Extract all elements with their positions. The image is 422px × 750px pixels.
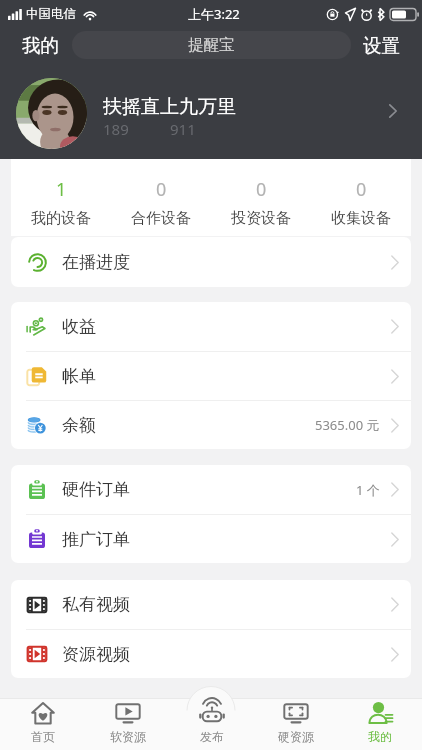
button[interactable]: 在播进度 [11,237,411,287]
staticText: 0 [156,177,167,202]
staticText: 帐单 [62,366,96,387]
staticText: 中国电信 [26,6,76,22]
button[interactable]: 扶摇直上九万里 [0,62,422,159]
staticText: 提醒宝 [188,35,235,55]
staticText: 0 [356,177,367,202]
staticText: 1 [56,177,67,202]
button[interactable]: 收益 [11,302,411,351]
staticText: 合作设备 [131,209,191,228]
button[interactable]: 0 [211,172,311,223]
staticText: 硬件订单 [62,479,130,500]
button[interactable]: 软资源 [85,686,170,750]
staticText: 我的 [368,729,392,744]
button[interactable]: 硬件订单 [11,465,411,514]
staticText: 5365.00 元 [315,416,380,434]
staticText: 余额 [62,415,96,436]
button[interactable]: 我的 [0,28,72,62]
staticText: 0 [256,177,267,202]
button[interactable]: 我的 [338,686,422,750]
staticText: 投资设备 [231,209,291,228]
button[interactable]: 余额 [11,401,411,449]
button[interactable]: 设置 [351,28,422,62]
staticText: 发布 [200,729,224,744]
staticText: 我的设备 [31,209,91,228]
staticText: 扶摇直上九万里 [103,95,236,119]
staticText: 推广订单 [62,529,130,550]
staticText: 收集设备 [331,209,391,228]
staticText: 首页 [31,729,55,744]
button[interactable]: 0 [311,172,411,223]
button[interactable]: 提醒宝 [72,31,351,59]
staticText: 收益 [62,316,96,337]
button[interactable]: 首页 [0,686,85,750]
button[interactable]: 资源视频 [11,630,411,678]
button[interactable]: 0 [111,172,211,223]
button[interactable]: 帐单 [11,352,411,400]
staticText: 资源视频 [62,644,130,665]
button[interactable]: 硬资源 [254,686,338,750]
staticText: 1 个 [356,481,380,499]
staticText: 我的 [22,34,59,57]
button[interactable]: 发布 [170,686,254,750]
staticText: 软资源 [110,729,146,744]
staticText: 在播进度 [62,252,130,273]
button[interactable]: 私有视频 [11,580,411,629]
button[interactable]: 1 [11,172,111,223]
staticText: 硬资源 [278,729,314,744]
staticText: 911 [170,119,196,139]
staticText: 私有视频 [62,594,130,615]
button[interactable]: 推广订单 [11,515,411,563]
staticText: 上午3:22 [188,5,240,23]
staticText: 189 [103,119,129,139]
staticText: 设置 [363,34,400,57]
